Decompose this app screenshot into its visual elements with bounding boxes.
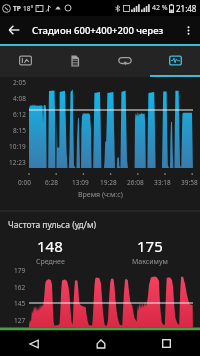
staticText: 6:28 [45,178,58,187]
staticText: 21:48 [176,3,197,14]
staticText: 19:28 [100,178,117,187]
staticText: 175 [137,236,163,256]
staticText: Стадион 600+400+200 через [32,24,164,37]
staticText: 39:58 [181,178,198,187]
staticText: Среднее [36,257,65,267]
button[interactable]: More options [176,18,200,42]
staticText: Максимум [132,257,168,267]
staticText: 6:12 [13,110,26,119]
button[interactable]: Details [50,44,100,77]
staticText: 26:08 [127,178,144,187]
button[interactable]: Back [21,331,46,356]
staticText: 33:18 [154,178,171,187]
staticText: 148 [37,236,63,256]
staticText: 42 % [152,3,168,13]
staticText: 18° [23,4,34,13]
button[interactable]: Charts [150,44,200,77]
staticText: Частота пульса (уд/м) [8,219,97,231]
staticText: 0:00 [18,178,31,187]
staticText: TP [13,4,21,13]
staticText: 127 [14,316,26,325]
button[interactable]: Laps [100,44,150,77]
staticText: 4:08 [13,94,26,103]
button[interactable]: Back [0,16,28,44]
button[interactable]: Recent apps [154,331,179,356]
button[interactable]: Home [88,331,113,356]
staticText: 8:15 [13,126,26,135]
staticText: 162 [14,283,26,292]
staticText: 12:23 [9,158,26,167]
button[interactable]: Map [0,44,50,77]
staticText: 13:09 [72,178,89,187]
staticText: 145 [14,299,26,308]
staticText: Время (ч:м:с) [78,190,123,200]
staticText: 10:19 [9,142,26,151]
staticText: 179 [14,266,26,275]
staticText: 2:05 [13,78,26,87]
